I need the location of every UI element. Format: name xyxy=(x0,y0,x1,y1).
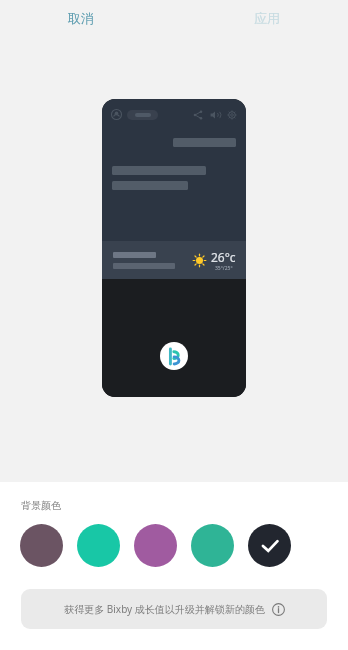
button[interactable]: 26°c xyxy=(102,241,246,279)
button[interactable]: Bixby xyxy=(160,342,188,370)
button[interactable]: 获得更多 Bixby 成长值以升级并解锁新的颜色 xyxy=(21,589,327,629)
button[interactable]: 取消 xyxy=(58,4,104,32)
staticText: 26°c xyxy=(211,249,236,265)
staticText: 应用 xyxy=(254,10,280,26)
button[interactable]: Search xyxy=(127,110,158,120)
button[interactable]: Orchid xyxy=(134,524,177,567)
staticText: 背景颜色 xyxy=(21,499,61,512)
staticText: 获得更多 Bixby 成长值以升级并解锁新的颜色 xyxy=(64,602,265,616)
staticText: 35°/25° xyxy=(215,265,233,272)
button[interactable]: Mauve xyxy=(20,524,63,567)
button[interactable]: Share xyxy=(193,110,203,120)
button[interactable]: Selected color xyxy=(248,524,291,567)
button[interactable]: 应用 xyxy=(244,4,290,32)
button[interactable]: Teal xyxy=(77,524,120,567)
other: Information xyxy=(272,603,285,616)
button[interactable]: Settings xyxy=(227,110,237,120)
button[interactable]: Green xyxy=(191,524,234,567)
button[interactable]: Profile xyxy=(111,109,122,120)
button[interactable]: Sound xyxy=(210,110,220,120)
staticText: 取消 xyxy=(68,10,94,26)
